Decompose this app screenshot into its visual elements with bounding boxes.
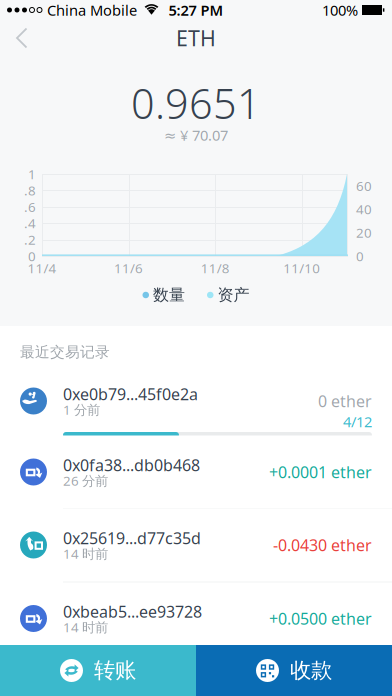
staticText: 11/6 — [114, 259, 143, 277]
staticText: 100% — [322, 0, 358, 20]
staticText: ETH — [176, 24, 216, 52]
button[interactable]: 0x25619...d77c35d — [0, 509, 392, 581]
button[interactable]: 0x0fa38...db0b468 — [0, 435, 392, 508]
button[interactable]: Back — [0, 20, 47, 56]
staticText: 5:27 PM — [168, 0, 223, 20]
staticText: 0x25619...d77c35d — [63, 527, 201, 549]
staticText: 14 时前 — [63, 545, 108, 562]
staticText: 0.9651 — [131, 76, 261, 130]
staticText: 0x0fa38...db0b468 — [63, 454, 200, 476]
staticText: 收款 — [290, 657, 332, 684]
staticText: .8 — [24, 181, 36, 199]
staticText: 最近交易记录 — [20, 343, 110, 361]
staticText: 0xe0b79...45f0e2a — [63, 383, 198, 405]
staticText: 4/12 — [343, 412, 372, 431]
staticText: 11/10 — [283, 259, 320, 277]
staticText: ≈ ¥ 70.07 — [164, 125, 228, 145]
button[interactable]: 收款 — [196, 645, 392, 696]
staticText: 11/8 — [201, 259, 230, 277]
button[interactable]: 转账 — [0, 645, 196, 696]
staticText: -0.0430 ether — [273, 534, 372, 556]
staticText: 26 分前 — [63, 472, 108, 489]
staticText: 0 — [28, 247, 36, 265]
staticText: 资产 — [217, 285, 249, 305]
button[interactable]: 0xbeab5...ee93728 — [0, 587, 392, 649]
staticText: 0 — [356, 247, 364, 265]
staticText: 0 ether — [318, 390, 372, 412]
staticText: 40 — [356, 200, 372, 218]
staticText: +0.0001 ether — [269, 461, 372, 483]
staticText: 11/4 — [27, 259, 56, 277]
staticText: .6 — [24, 198, 36, 216]
staticText: 0xbeab5...ee93728 — [63, 601, 202, 622]
button[interactable]: 0xe0b79...45f0e2a — [0, 370, 392, 443]
staticText: China Mobile — [47, 0, 137, 20]
staticText: 1 分前 — [63, 401, 100, 418]
staticText: .2 — [24, 231, 36, 248]
staticText: 60 — [356, 177, 372, 195]
staticText: +0.0500 ether — [269, 608, 372, 629]
staticText: 数量 — [153, 285, 185, 305]
staticText: 1 — [28, 165, 36, 183]
staticText: 转账 — [94, 657, 136, 684]
staticText: .4 — [24, 214, 36, 232]
staticText: 14 时前 — [63, 618, 108, 636]
staticText: 20 — [356, 224, 372, 241]
